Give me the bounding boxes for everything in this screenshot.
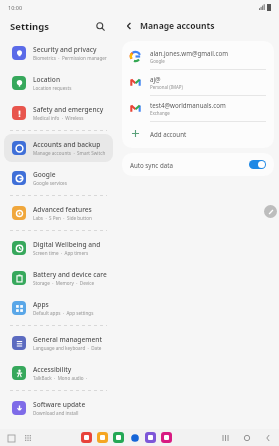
staticText: Google services xyxy=(33,180,67,186)
button[interactable]: Edit xyxy=(264,205,277,218)
staticText: Storage · Memory · Device protection xyxy=(33,280,107,286)
button[interactable]: Recents xyxy=(220,432,231,443)
button[interactable]: Google xyxy=(4,164,113,192)
staticText: Google xyxy=(33,170,56,179)
button[interactable]: Apps xyxy=(4,294,113,322)
button[interactable]: alan.jones.wm@gmail.com xyxy=(122,44,274,70)
staticText: TalkBack · Mono audio · Assistant menu xyxy=(33,375,107,381)
button[interactable]: aj@ xyxy=(122,70,274,96)
staticText: Biometrics · Permission manager xyxy=(33,55,107,61)
button[interactable]: General management xyxy=(4,329,113,357)
button[interactable]: Security and privacy xyxy=(4,39,113,67)
button[interactable]: App xyxy=(113,432,124,443)
staticText: Screen time · App timers xyxy=(33,250,89,256)
button[interactable]: Recent apps panel xyxy=(6,433,16,443)
button[interactable]: Home xyxy=(241,432,252,443)
button[interactable]: Location xyxy=(4,69,113,97)
staticText: Medical info · Wireless emergency alerts xyxy=(33,115,107,121)
staticText: Download and install xyxy=(33,410,79,416)
button[interactable]: Advanced features xyxy=(4,199,113,227)
staticText: Apps xyxy=(33,300,49,309)
button[interactable]: Search xyxy=(93,19,107,33)
staticText: test4@worldmanuals.com xyxy=(150,101,226,109)
staticText: Location requests xyxy=(33,85,72,91)
button[interactable]: All apps xyxy=(23,433,33,443)
staticText: Settings xyxy=(10,20,49,33)
button[interactable]: Digital Wellbeing and parental controls xyxy=(4,234,113,262)
button[interactable]: Back xyxy=(262,432,273,443)
button[interactable]: Battery and device care xyxy=(4,264,113,292)
staticText: Personal (IMAP) xyxy=(150,84,183,90)
staticText: Digital Wellbeing and parental controls xyxy=(33,240,107,249)
staticText: Accessibility xyxy=(33,365,72,374)
staticText: Exchange xyxy=(150,110,170,116)
staticText: Safety and emergency xyxy=(33,105,104,114)
staticText: Add account xyxy=(150,130,187,138)
staticText: aj@ xyxy=(150,75,161,83)
button[interactable]: Software update xyxy=(4,394,113,422)
button[interactable]: Messages xyxy=(129,432,140,443)
staticText: Battery and device care xyxy=(33,270,107,279)
button[interactable]: App xyxy=(81,432,92,443)
staticText: Security and privacy xyxy=(33,45,97,54)
button[interactable]: App xyxy=(97,432,108,443)
button[interactable]: Auto sync data xyxy=(122,153,274,176)
staticText: Location xyxy=(33,75,61,84)
staticText: General management xyxy=(33,335,102,344)
button[interactable]: test4@worldmanuals.com xyxy=(122,96,274,122)
staticText: alan.jones.wm@gmail.com xyxy=(150,49,228,57)
staticText: Auto sync data xyxy=(130,161,173,169)
staticText: Labs · S Pen · Side button xyxy=(33,215,92,221)
button[interactable]: App xyxy=(161,432,172,443)
staticText: Software update xyxy=(33,400,86,409)
staticText: Language and keyboard · Date and time xyxy=(33,345,107,351)
staticText: Manage accounts · Smart Switch xyxy=(33,150,106,156)
button[interactable]: Safety and emergency xyxy=(4,99,113,127)
button[interactable]: Accounts and backup xyxy=(4,134,113,162)
staticText: Manage accounts xyxy=(140,20,215,32)
staticText: Google xyxy=(150,58,165,64)
staticText: Advanced features xyxy=(33,205,92,214)
button[interactable]: Add account xyxy=(122,122,274,145)
button[interactable]: App xyxy=(145,432,156,443)
button[interactable]: Back xyxy=(121,18,137,34)
staticText: Accounts and backup xyxy=(33,140,101,149)
staticText: Default apps · App settings xyxy=(33,310,94,316)
staticText: 10:00 xyxy=(8,4,23,11)
button[interactable]: Accessibility xyxy=(4,359,113,387)
